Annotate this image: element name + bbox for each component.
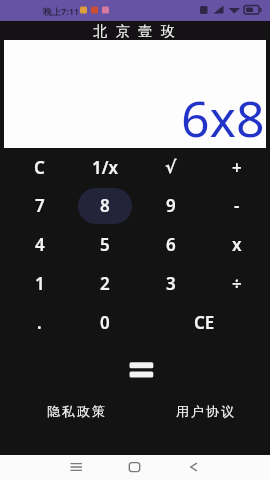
button[interactable] (125, 358, 157, 384)
button[interactable]: 5 (72, 225, 138, 264)
staticText: 1 (35, 272, 45, 295)
button[interactable]: 2 (72, 264, 138, 303)
button[interactable]: x (204, 225, 270, 264)
button[interactable]: 7 (7, 186, 72, 225)
button[interactable]: 1 (7, 264, 72, 303)
button[interactable]: - (204, 186, 270, 225)
button[interactable]: C (7, 148, 72, 186)
button[interactable] (90, 455, 180, 480)
button[interactable] (0, 455, 90, 480)
button[interactable]: 9 (138, 186, 204, 225)
staticText: 北 京 壹 玫 (93, 21, 178, 40)
button[interactable]: 1/x (72, 148, 138, 186)
button[interactable]: + (204, 148, 270, 186)
staticText: . (37, 311, 42, 334)
staticText: 9 (166, 194, 176, 217)
staticText: CE (194, 311, 215, 334)
button[interactable]: ÷ (204, 264, 270, 303)
button[interactable]: 3 (138, 264, 204, 303)
staticText: 1/x (92, 156, 119, 179)
staticText: 5 (100, 233, 110, 256)
staticText: 4 (35, 233, 45, 256)
staticText: x (232, 233, 242, 256)
button[interactable]: 隐私政策 (46, 403, 106, 419)
staticText: C (34, 156, 45, 179)
staticText: √ (165, 157, 177, 177)
staticText: 7 (35, 194, 45, 217)
staticText: 6x8 (181, 84, 265, 152)
staticText: - (234, 194, 240, 217)
staticText: 0 (100, 311, 110, 334)
staticText: 3 (166, 272, 176, 295)
staticText: 2 (100, 272, 110, 295)
button[interactable]: 4 (7, 225, 72, 264)
staticText: 晚上7:11 (43, 5, 79, 17)
button[interactable]: 6 (138, 225, 204, 264)
button[interactable]: CE (138, 303, 270, 342)
button[interactable]: . (7, 303, 72, 342)
staticText: + (232, 156, 242, 179)
button[interactable]: 0 (72, 303, 138, 342)
button[interactable]: 8 (72, 186, 138, 225)
staticText: ÷ (232, 272, 242, 295)
staticText: 8 (100, 194, 110, 217)
button[interactable]: √ (138, 148, 204, 186)
button[interactable] (180, 455, 270, 480)
staticText: 6 (166, 233, 176, 256)
button[interactable]: 用户协议 (175, 403, 235, 419)
